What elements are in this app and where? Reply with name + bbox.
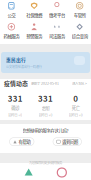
staticText: 有帮助: [18, 138, 30, 145]
button[interactable]: 缴考平台: [45, 3, 68, 17]
staticText: 较昨日 +0: [8, 112, 22, 117]
staticText: 缴考平台: [49, 12, 65, 18]
staticText: 331: [38, 92, 53, 104]
staticText: 更新于 2022-05-01: [31, 81, 59, 86]
staticText: 死亡: [72, 104, 80, 111]
staticText: 社保缴费: [26, 12, 42, 18]
button[interactable]: 药械服务: [0, 24, 23, 38]
button[interactable]: 综合查询: [68, 24, 91, 38]
staticText: 车管所: [74, 12, 86, 18]
button[interactable]: 进入专区: [72, 81, 87, 86]
button[interactable]: 遇到问题: [53, 138, 81, 146]
button[interactable]: 司法服务: [45, 24, 68, 38]
staticText: >: [85, 81, 87, 86]
button[interactable]: 车管所: [68, 3, 91, 17]
staticText: 惠民出行: [6, 56, 26, 63]
staticText: 您想使用的服务在这儿吗?: [22, 127, 68, 134]
staticText: 确诊: [11, 104, 19, 111]
staticText: 公交: [7, 12, 15, 18]
staticText: 0: [73, 92, 78, 104]
staticText: 较昨日 +0: [69, 112, 83, 117]
staticText: 较昨日 +0: [38, 112, 52, 117]
staticText: 综合查询: [72, 33, 88, 39]
staticText: 331: [8, 92, 23, 104]
button[interactable]: 公交: [0, 3, 23, 17]
staticText: 预警服务: [26, 33, 42, 39]
button[interactable]: 社保缴费: [23, 3, 46, 17]
button[interactable]: 有帮助: [9, 138, 34, 146]
staticText: 为您推荐的更多便民服务: [29, 160, 62, 165]
button[interactable]: 预警服务: [23, 24, 46, 38]
staticText: 公交地铁轮渡出行一码通行: [6, 65, 42, 69]
staticText: 药械服务: [3, 33, 19, 39]
staticText: 遇到问题: [62, 138, 78, 145]
staticText: 疫情动态: [4, 79, 28, 87]
staticText: 司法服务: [49, 33, 65, 39]
staticText: 治愈: [41, 104, 49, 111]
staticText: 进入专区: [72, 81, 84, 86]
